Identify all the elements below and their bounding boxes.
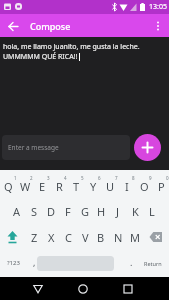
- staticText: ?123: [7, 259, 20, 267]
- button[interactable]: H: [92, 203, 110, 219]
- button[interactable]: X: [42, 229, 60, 245]
- button[interactable]: V: [76, 229, 94, 245]
- staticText: 2: [30, 175, 33, 181]
- button[interactable]: O: [135, 178, 153, 194]
- button[interactable]: E: [33, 178, 51, 194]
- staticText: T: [73, 179, 80, 194]
- button[interactable]: 6: [90, 170, 108, 186]
- button[interactable]: Y: [84, 178, 102, 194]
- button[interactable]: L: [143, 203, 161, 219]
- button[interactable]: P: [152, 178, 169, 194]
- staticText: O: [140, 179, 149, 194]
- staticText: K: [132, 204, 139, 219]
- staticText: U: [106, 179, 115, 194]
- button[interactable]: F: [59, 203, 77, 219]
- button[interactable]: 8: [124, 170, 142, 186]
- staticText: C: [65, 230, 72, 245]
- staticText: Z: [31, 230, 38, 245]
- staticText: W: [20, 179, 31, 194]
- staticText: R: [56, 179, 63, 194]
- staticText: V: [82, 230, 89, 245]
- button[interactable]: I: [118, 178, 136, 194]
- button[interactable]: M: [126, 229, 144, 245]
- button[interactable]: .: [122, 254, 140, 270]
- button[interactable]: 1: [6, 170, 24, 186]
- button[interactable]: A: [8, 203, 26, 219]
- button[interactable]: 7: [107, 170, 125, 186]
- staticText: 9: [149, 175, 152, 181]
- button[interactable]: 5: [73, 170, 91, 186]
- button[interactable]: [4, 17, 22, 35]
- staticText: S: [31, 204, 38, 219]
- staticText: D: [47, 204, 56, 219]
- staticText: E: [39, 179, 46, 194]
- staticText: J: [116, 204, 120, 219]
- button[interactable]: B: [92, 229, 110, 245]
- staticText: H: [97, 204, 106, 219]
- button[interactable]: J: [109, 203, 127, 219]
- button[interactable]: R: [50, 178, 68, 194]
- staticText: M: [130, 230, 140, 245]
- button[interactable]: U: [101, 178, 119, 194]
- button[interactable]: 2: [22, 170, 40, 186]
- staticText: A: [13, 204, 21, 219]
- staticText: hola, me llamo Juanito, me gusta la lech…: [3, 42, 140, 52]
- staticText: 4: [64, 175, 67, 181]
- button[interactable]: [151, 19, 165, 33]
- button[interactable]: D: [42, 203, 60, 219]
- staticText: P: [158, 179, 165, 194]
- button[interactable]: Z: [25, 229, 43, 245]
- staticText: 8: [132, 175, 135, 181]
- button[interactable]: T: [67, 178, 85, 194]
- button[interactable]: ,: [25, 254, 43, 270]
- staticText: ,: [33, 256, 36, 268]
- staticText: Return: [144, 260, 162, 267]
- button[interactable]: ?123: [4, 255, 22, 271]
- button[interactable]: 4: [56, 170, 74, 186]
- button[interactable]: 9: [141, 170, 159, 186]
- staticText: Y: [90, 179, 97, 194]
- staticText: UMMMMM QUÉ RICA!!: [3, 52, 78, 62]
- staticText: G: [81, 204, 90, 219]
- staticText: F: [65, 204, 71, 219]
- button[interactable]: 0: [158, 170, 169, 186]
- button[interactable]: G: [76, 203, 94, 219]
- staticText: Enter a message: [8, 143, 59, 152]
- staticText: 3: [47, 175, 50, 181]
- button[interactable]: Return: [144, 255, 162, 271]
- staticText: X: [48, 230, 55, 245]
- staticText: 0: [166, 175, 169, 181]
- button[interactable]: [72, 278, 94, 300]
- button[interactable]: Q: [0, 178, 17, 194]
- staticText: N: [114, 230, 123, 245]
- staticText: 13:05: [149, 2, 167, 12]
- button[interactable]: K: [126, 203, 144, 219]
- button[interactable]: N: [109, 229, 127, 245]
- staticText: Q: [4, 179, 13, 194]
- button[interactable]: [117, 278, 139, 300]
- button[interactable]: S: [25, 203, 43, 219]
- staticText: Compose: [30, 20, 71, 32]
- staticText: .: [130, 256, 133, 268]
- button[interactable]: Enter a message: [2, 135, 130, 160]
- button[interactable]: [134, 134, 161, 161]
- staticText: I: [125, 179, 129, 194]
- button[interactable]: W: [16, 178, 34, 194]
- staticText: 6: [98, 175, 101, 181]
- staticText: 5: [81, 175, 84, 181]
- button[interactable]: [27, 278, 49, 300]
- staticText: 7: [115, 175, 118, 181]
- staticText: 1: [14, 175, 17, 181]
- staticText: B: [97, 230, 105, 245]
- button[interactable]: C: [59, 229, 77, 245]
- button[interactable]: 3: [39, 170, 57, 186]
- staticText: L: [149, 204, 155, 219]
